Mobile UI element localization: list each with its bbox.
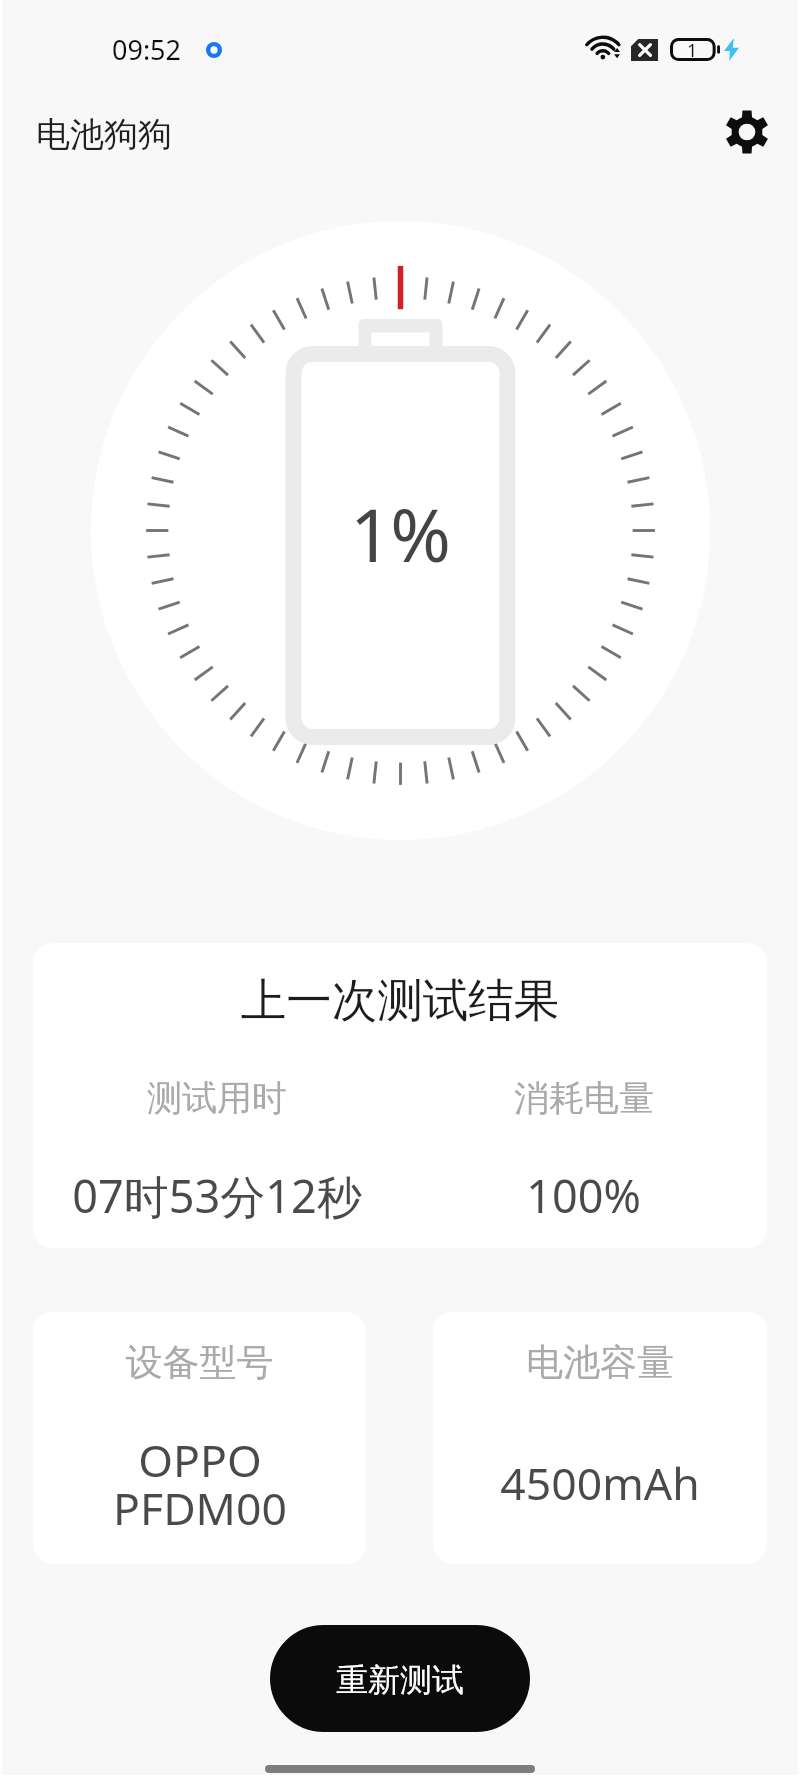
staticText: 4500mAh <box>500 1452 700 1513</box>
button[interactable]: 电池容量 <box>433 1312 767 1564</box>
staticText: 100% <box>526 1165 641 1226</box>
button[interactable]: Settings <box>716 101 778 163</box>
button[interactable]: 重新测试 <box>270 1625 530 1732</box>
staticText: 测试用时 <box>147 1076 287 1120</box>
staticText: OPPO PFDM00 <box>113 1429 287 1525</box>
staticText: 设备型号 <box>33 1339 366 1386</box>
staticText: 1% <box>350 484 450 583</box>
button[interactable]: 设备型号 <box>33 1312 366 1564</box>
staticText: 09:52 <box>112 31 182 68</box>
staticText: 1 <box>687 38 698 61</box>
staticText: 电池狗狗 <box>36 113 172 156</box>
staticText: 消耗电量 <box>514 1076 654 1120</box>
staticText: 上一次测试结果 <box>33 972 767 1029</box>
staticText: 电池容量 <box>433 1339 767 1386</box>
button[interactable]: 上一次测试结果 <box>33 943 767 1248</box>
staticText: 重新测试 <box>336 1660 464 1700</box>
staticText: 07时53分12秒 <box>72 1165 362 1226</box>
